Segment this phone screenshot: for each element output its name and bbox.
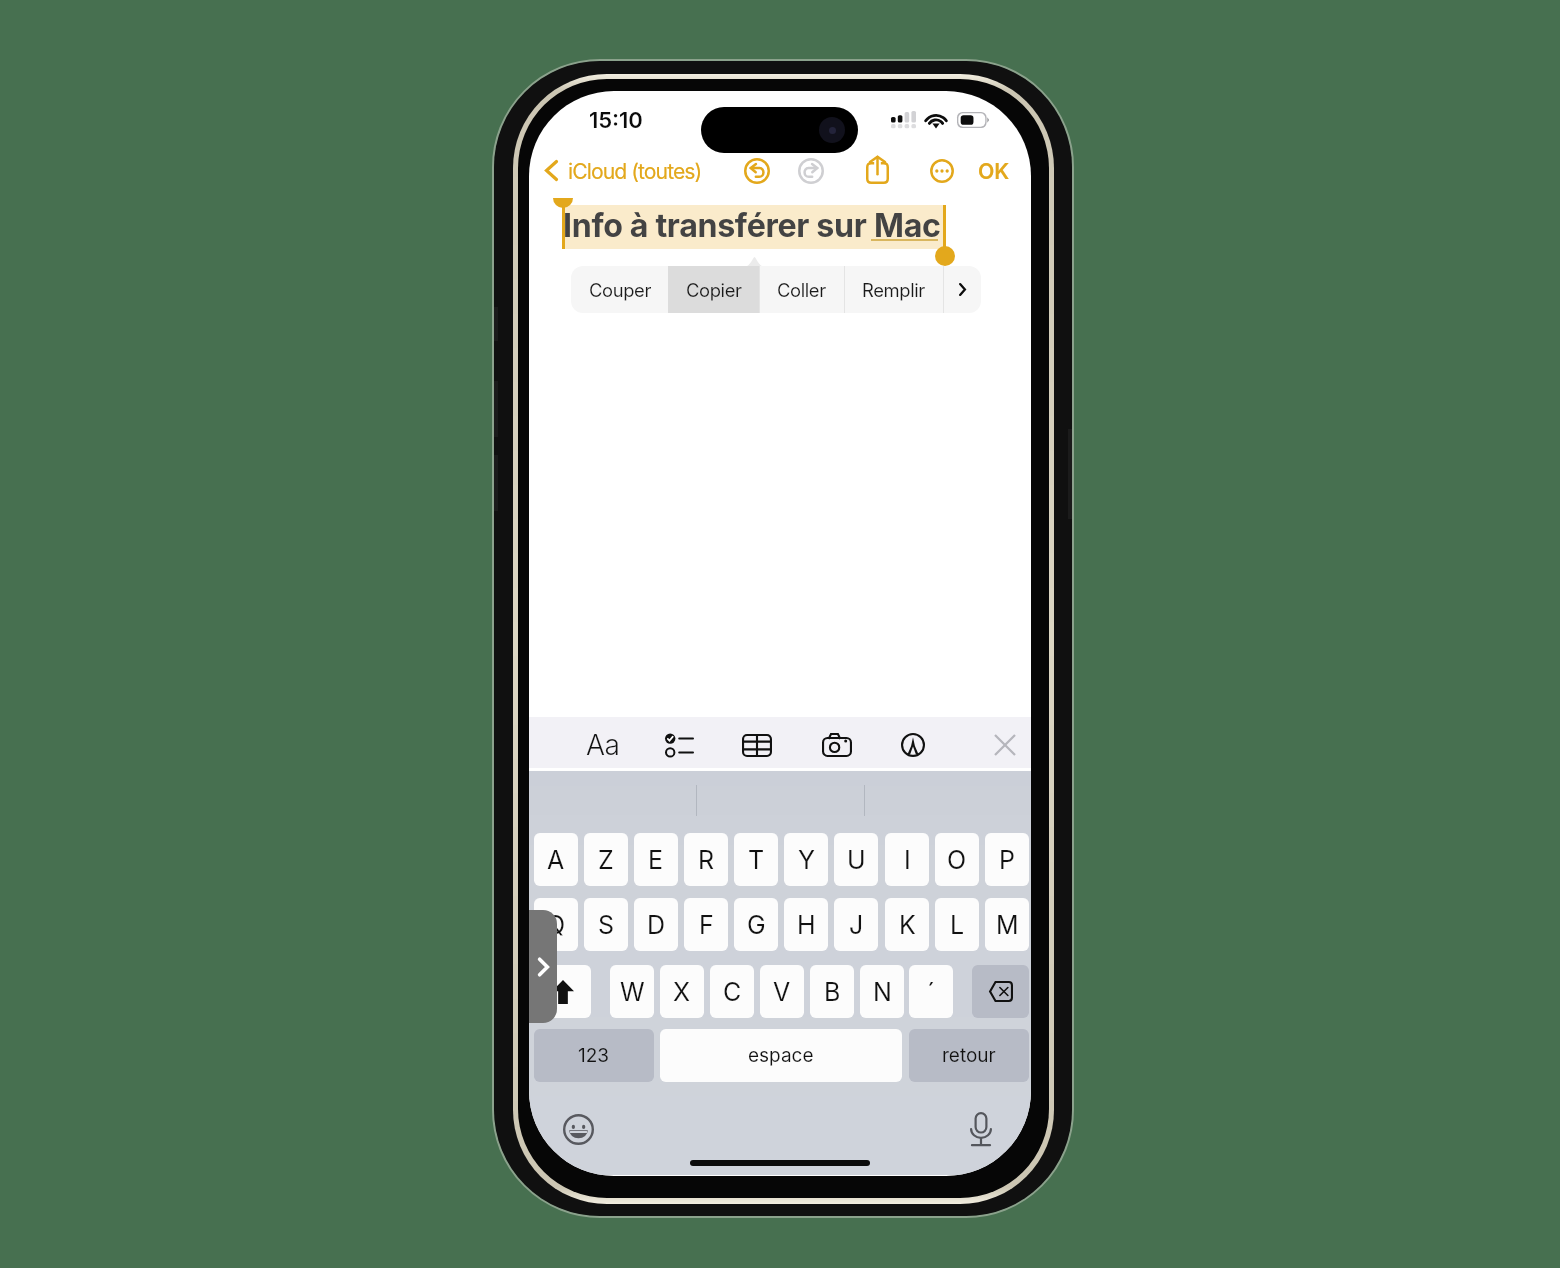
button[interactable]: Z bbox=[584, 833, 628, 886]
button[interactable]: S bbox=[584, 898, 628, 951]
button[interactable]: Remplir bbox=[844, 266, 943, 313]
button[interactable]: E bbox=[634, 833, 678, 886]
staticText: 15:10 bbox=[589, 107, 643, 134]
button[interactable]: Format du texte bbox=[583, 725, 623, 765]
staticText: R bbox=[698, 845, 715, 875]
staticText: Info à transférer sur bbox=[563, 206, 874, 245]
staticText: G bbox=[747, 910, 766, 940]
button[interactable]: Emoji bbox=[560, 1111, 597, 1148]
staticText: O bbox=[947, 845, 967, 875]
staticText: Z bbox=[598, 845, 614, 875]
button[interactable]: Rétablir bbox=[792, 152, 830, 190]
button[interactable]: H bbox=[784, 898, 828, 951]
staticText: Y bbox=[798, 845, 815, 875]
button[interactable]: Appareil photo bbox=[817, 725, 857, 765]
staticText: X bbox=[673, 977, 691, 1007]
button[interactable]: B bbox=[810, 965, 854, 1018]
staticText: W bbox=[620, 977, 645, 1007]
button[interactable]: Majuscule bbox=[534, 965, 591, 1018]
button[interactable]: D bbox=[634, 898, 678, 951]
staticText: Couper bbox=[589, 279, 651, 301]
button[interactable]: Y bbox=[784, 833, 828, 886]
staticText: M bbox=[996, 910, 1019, 940]
staticText: F bbox=[699, 910, 714, 940]
button[interactable]: espace bbox=[660, 1029, 902, 1082]
staticText: T bbox=[748, 845, 765, 875]
button[interactable]: I bbox=[885, 833, 929, 886]
staticText: 123 bbox=[578, 1044, 610, 1067]
staticText: OK bbox=[978, 158, 1009, 184]
button[interactable]: J bbox=[834, 898, 878, 951]
button[interactable]: Fermer bbox=[985, 725, 1025, 765]
button[interactable]: retour bbox=[909, 1029, 1029, 1082]
staticText: iCloud (toutes) bbox=[568, 158, 702, 184]
staticText: Aa bbox=[586, 728, 620, 762]
button[interactable]: Copier bbox=[668, 266, 759, 313]
staticText: U bbox=[847, 845, 866, 875]
button[interactable]: F bbox=[684, 898, 728, 951]
button[interactable]: U bbox=[834, 833, 878, 886]
button[interactable]: R bbox=[684, 833, 728, 886]
button[interactable]: P bbox=[985, 833, 1029, 886]
staticText: Mac bbox=[874, 206, 941, 245]
button[interactable]: Tableau bbox=[737, 725, 777, 765]
button[interactable]: C bbox=[710, 965, 754, 1018]
button[interactable]: V bbox=[760, 965, 804, 1018]
staticText: J bbox=[849, 910, 864, 940]
staticText: P bbox=[999, 845, 1015, 875]
button[interactable]: Liste de contrôle bbox=[659, 725, 699, 765]
staticText: N bbox=[873, 977, 892, 1007]
button[interactable]: 123 bbox=[534, 1029, 654, 1082]
staticText: H bbox=[797, 910, 816, 940]
staticText: C bbox=[723, 977, 742, 1007]
button[interactable]: ´ bbox=[909, 965, 953, 1018]
button[interactable]: Changer de clavier bbox=[529, 910, 557, 1023]
button[interactable]: Dictée bbox=[962, 1110, 1000, 1148]
staticText: V bbox=[773, 977, 791, 1007]
button[interactable]: Coller bbox=[759, 266, 844, 313]
staticText: Coller bbox=[777, 279, 826, 301]
staticText: I bbox=[904, 845, 911, 875]
button[interactable]: X bbox=[660, 965, 704, 1018]
button[interactable]: N bbox=[860, 965, 904, 1018]
button[interactable]: W bbox=[610, 965, 654, 1018]
button[interactable]: O bbox=[935, 833, 979, 886]
staticText: K bbox=[899, 910, 916, 940]
staticText: L bbox=[950, 910, 965, 940]
button[interactable]: K bbox=[885, 898, 929, 951]
staticText: E bbox=[648, 845, 664, 875]
button[interactable]: OK bbox=[969, 153, 1017, 189]
button[interactable]: Plus bbox=[923, 152, 961, 190]
button[interactable]: iCloud (toutes) bbox=[541, 151, 729, 191]
button[interactable]: Annuler bbox=[738, 152, 776, 190]
button[interactable]: T bbox=[734, 833, 778, 886]
button[interactable]: Annotation bbox=[893, 725, 933, 765]
staticText: espace bbox=[748, 1044, 814, 1067]
button[interactable]: Plus d'options bbox=[943, 266, 981, 313]
button[interactable]: M bbox=[985, 898, 1029, 951]
staticText: retour bbox=[942, 1044, 996, 1067]
button[interactable]: L bbox=[935, 898, 979, 951]
button[interactable]: Partager bbox=[857, 150, 897, 190]
staticText: A bbox=[547, 845, 565, 875]
button[interactable]: Couper bbox=[571, 266, 668, 313]
button[interactable]: Q bbox=[534, 898, 578, 951]
staticText: Q bbox=[546, 910, 566, 940]
button[interactable]: A bbox=[534, 833, 578, 886]
staticText: D bbox=[647, 910, 666, 940]
button[interactable]: G bbox=[734, 898, 778, 951]
staticText: S bbox=[598, 910, 615, 940]
staticText: Remplir bbox=[862, 279, 925, 301]
staticText: Copier bbox=[686, 279, 742, 301]
button[interactable]: Supprimer bbox=[972, 965, 1029, 1018]
staticText: ´ bbox=[927, 977, 936, 1007]
staticText: B bbox=[824, 977, 841, 1007]
